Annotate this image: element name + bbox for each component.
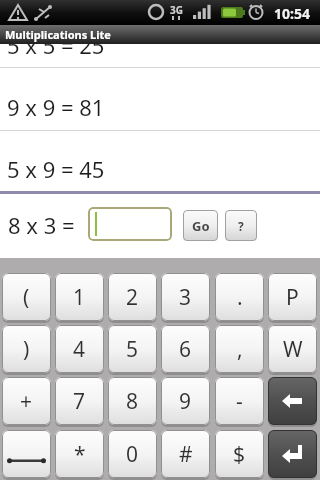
button[interactable]: $ [215,430,264,478]
staticText: ? [238,218,244,234]
button[interactable]: 8 [108,377,157,425]
staticText: 10:54 [274,4,310,23]
staticText: 5 x 5 = 25 [7,44,105,60]
button[interactable]: , [215,325,264,373]
button[interactable]: 7 [55,377,104,425]
staticText: , [237,335,243,364]
staticText: 3G [170,3,183,17]
button[interactable]: 3 [161,273,210,321]
staticText: 1 [73,283,86,312]
button[interactable]: ) [2,325,51,373]
staticText: 2 [126,283,139,312]
button[interactable]: . [215,273,264,321]
button[interactable]: * [55,430,104,478]
button[interactable]: 1 [55,273,104,321]
button[interactable]: ? [225,210,257,241]
button[interactable]: 2 [108,273,157,321]
staticText: 5 x 9 = 45 [7,154,105,184]
staticText: # [179,440,193,469]
staticText: 3 [179,283,192,312]
staticText: Multiplications Lite [5,27,111,42]
staticText: 4 [73,335,86,364]
button[interactable]: 9 [161,377,210,425]
button[interactable] [268,430,317,478]
staticText: 0 [126,440,139,469]
button[interactable] [88,207,172,241]
staticText: W [283,335,303,364]
staticText: 7 [73,387,86,416]
staticText: P [286,283,299,312]
staticText: $ [233,440,246,469]
button[interactable]: 5 [108,325,157,373]
button[interactable]: Go [183,210,218,241]
button[interactable]: + [2,377,51,425]
button[interactable] [2,430,51,478]
staticText: 8 x 3 = [8,210,81,240]
button[interactable] [268,377,317,425]
button[interactable]: W [268,325,317,373]
staticText: ) [23,335,30,364]
button[interactable]: 0 [108,430,157,478]
button[interactable]: 6 [161,325,210,373]
button[interactable]: P [268,273,317,321]
button[interactable]: # [161,430,210,478]
staticText: 9 [179,387,192,416]
staticText: . [237,283,243,312]
button[interactable]: 4 [55,325,104,373]
staticText: 8 [126,387,139,416]
button[interactable]: - [215,377,264,425]
staticText: 6 [179,335,192,364]
button[interactable]: ( [2,273,51,321]
staticText: - [236,387,243,416]
staticText: + [20,387,33,416]
staticText: ( [23,283,30,312]
staticText: * [74,440,86,469]
staticText: Go [192,217,210,235]
staticText: 5 [126,335,139,364]
staticText: 9 x 9 = 81 [7,92,105,122]
